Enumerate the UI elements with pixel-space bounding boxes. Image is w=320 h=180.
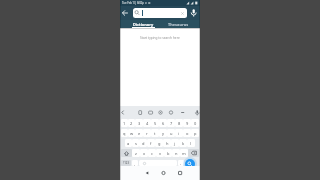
button[interactable]: 2 [128, 119, 135, 127]
button[interactable] [120, 6, 133, 20]
button[interactable]: t [151, 129, 159, 137]
button[interactable]: 1 [121, 119, 128, 127]
staticText: p [194, 131, 197, 136]
staticText: r [146, 131, 148, 136]
button[interactable] [189, 6, 199, 20]
button[interactable]: a [125, 139, 132, 147]
staticText: 3 [138, 121, 141, 126]
button[interactable]: 8 [175, 119, 183, 127]
staticText: a [127, 141, 130, 146]
button[interactable] [121, 149, 132, 157]
staticText: 5 [154, 121, 157, 126]
button[interactable]: m [180, 149, 188, 157]
button[interactable]: z [132, 149, 140, 157]
button[interactable]: 9 [183, 119, 191, 127]
button[interactable] [185, 159, 195, 169]
button[interactable]: j [171, 139, 179, 147]
button[interactable] [173, 166, 200, 180]
staticText: z [135, 151, 137, 156]
staticText: . [180, 160, 182, 166]
staticText: 8 [178, 121, 181, 126]
button[interactable]: l [187, 139, 195, 147]
staticText: w [130, 131, 134, 136]
button[interactable]: f [147, 139, 155, 147]
staticText: o [186, 131, 189, 136]
staticText: h [166, 141, 169, 146]
button[interactable]: 7 [167, 119, 175, 127]
button[interactable]: u [167, 129, 175, 137]
button[interactable]: 6 [159, 119, 167, 127]
staticText: b [167, 151, 170, 156]
button[interactable]: 3 [135, 119, 143, 127]
button[interactable]: o [183, 129, 191, 137]
staticText: u [170, 131, 173, 136]
button[interactable]: w [128, 129, 135, 137]
staticText: j [174, 141, 176, 146]
staticText: s [135, 141, 137, 146]
button[interactable]: Dictionary [120, 20, 160, 28]
button[interactable]: k [179, 139, 187, 147]
button[interactable]: b [164, 149, 172, 157]
staticText: Start typing to search here [140, 36, 180, 40]
staticText: 0 [194, 121, 197, 126]
staticText: v [159, 151, 162, 156]
staticText: c [151, 151, 153, 156]
button[interactable]: Thesaurus [160, 20, 200, 28]
button[interactable]: r [143, 129, 151, 137]
button[interactable] [188, 149, 199, 157]
button[interactable]: h [163, 139, 171, 147]
button[interactable]: n [172, 149, 180, 157]
button[interactable]: p [191, 129, 199, 137]
staticText: , [134, 161, 136, 166]
button[interactable]: i [175, 129, 183, 137]
button[interactable]: x [140, 149, 148, 157]
staticText: Dictionary [133, 22, 154, 27]
staticText: x [143, 151, 146, 156]
button[interactable]: e [135, 129, 143, 137]
staticText: y [162, 131, 165, 136]
staticText: d [142, 141, 145, 146]
staticText: n [175, 151, 178, 156]
button[interactable] [139, 160, 177, 166]
staticText: Thesaurus [168, 22, 189, 27]
staticText: k [182, 141, 185, 146]
staticText: 4 [146, 121, 149, 126]
button[interactable]: 5 [151, 119, 159, 127]
button[interactable]: c [148, 149, 156, 157]
staticText: ?123 [123, 161, 130, 165]
staticText: 9 [186, 121, 189, 126]
staticText: t [154, 131, 156, 136]
button[interactable] [120, 166, 146, 180]
button[interactable]: . [178, 160, 184, 166]
staticText: 6 [162, 121, 165, 126]
button[interactable]: v [156, 149, 164, 157]
staticText: 2 [130, 121, 133, 126]
staticText: Tue Feb 13, 8:02p ▾ ✙ [122, 1, 151, 5]
button[interactable]: , [132, 160, 138, 166]
button[interactable]: q [121, 129, 128, 137]
staticText: 7 [170, 121, 173, 126]
button[interactable]: 4 [143, 119, 151, 127]
button[interactable]: 0 [191, 119, 199, 127]
button[interactable]: s [132, 139, 139, 147]
staticText: 1 [123, 121, 126, 126]
button[interactable]: d [139, 139, 147, 147]
staticText: l [190, 141, 192, 146]
button[interactable]: y [159, 129, 167, 137]
button[interactable] [146, 166, 173, 180]
staticText: q [123, 131, 126, 136]
button[interactable] [133, 8, 187, 18]
staticText: e [138, 131, 141, 136]
staticText: f [150, 141, 152, 146]
button[interactable]: g [155, 139, 163, 147]
button[interactable]: ?123 [121, 160, 131, 166]
staticText: i [178, 131, 180, 136]
staticText: g [158, 141, 161, 146]
staticText: m [182, 151, 186, 156]
